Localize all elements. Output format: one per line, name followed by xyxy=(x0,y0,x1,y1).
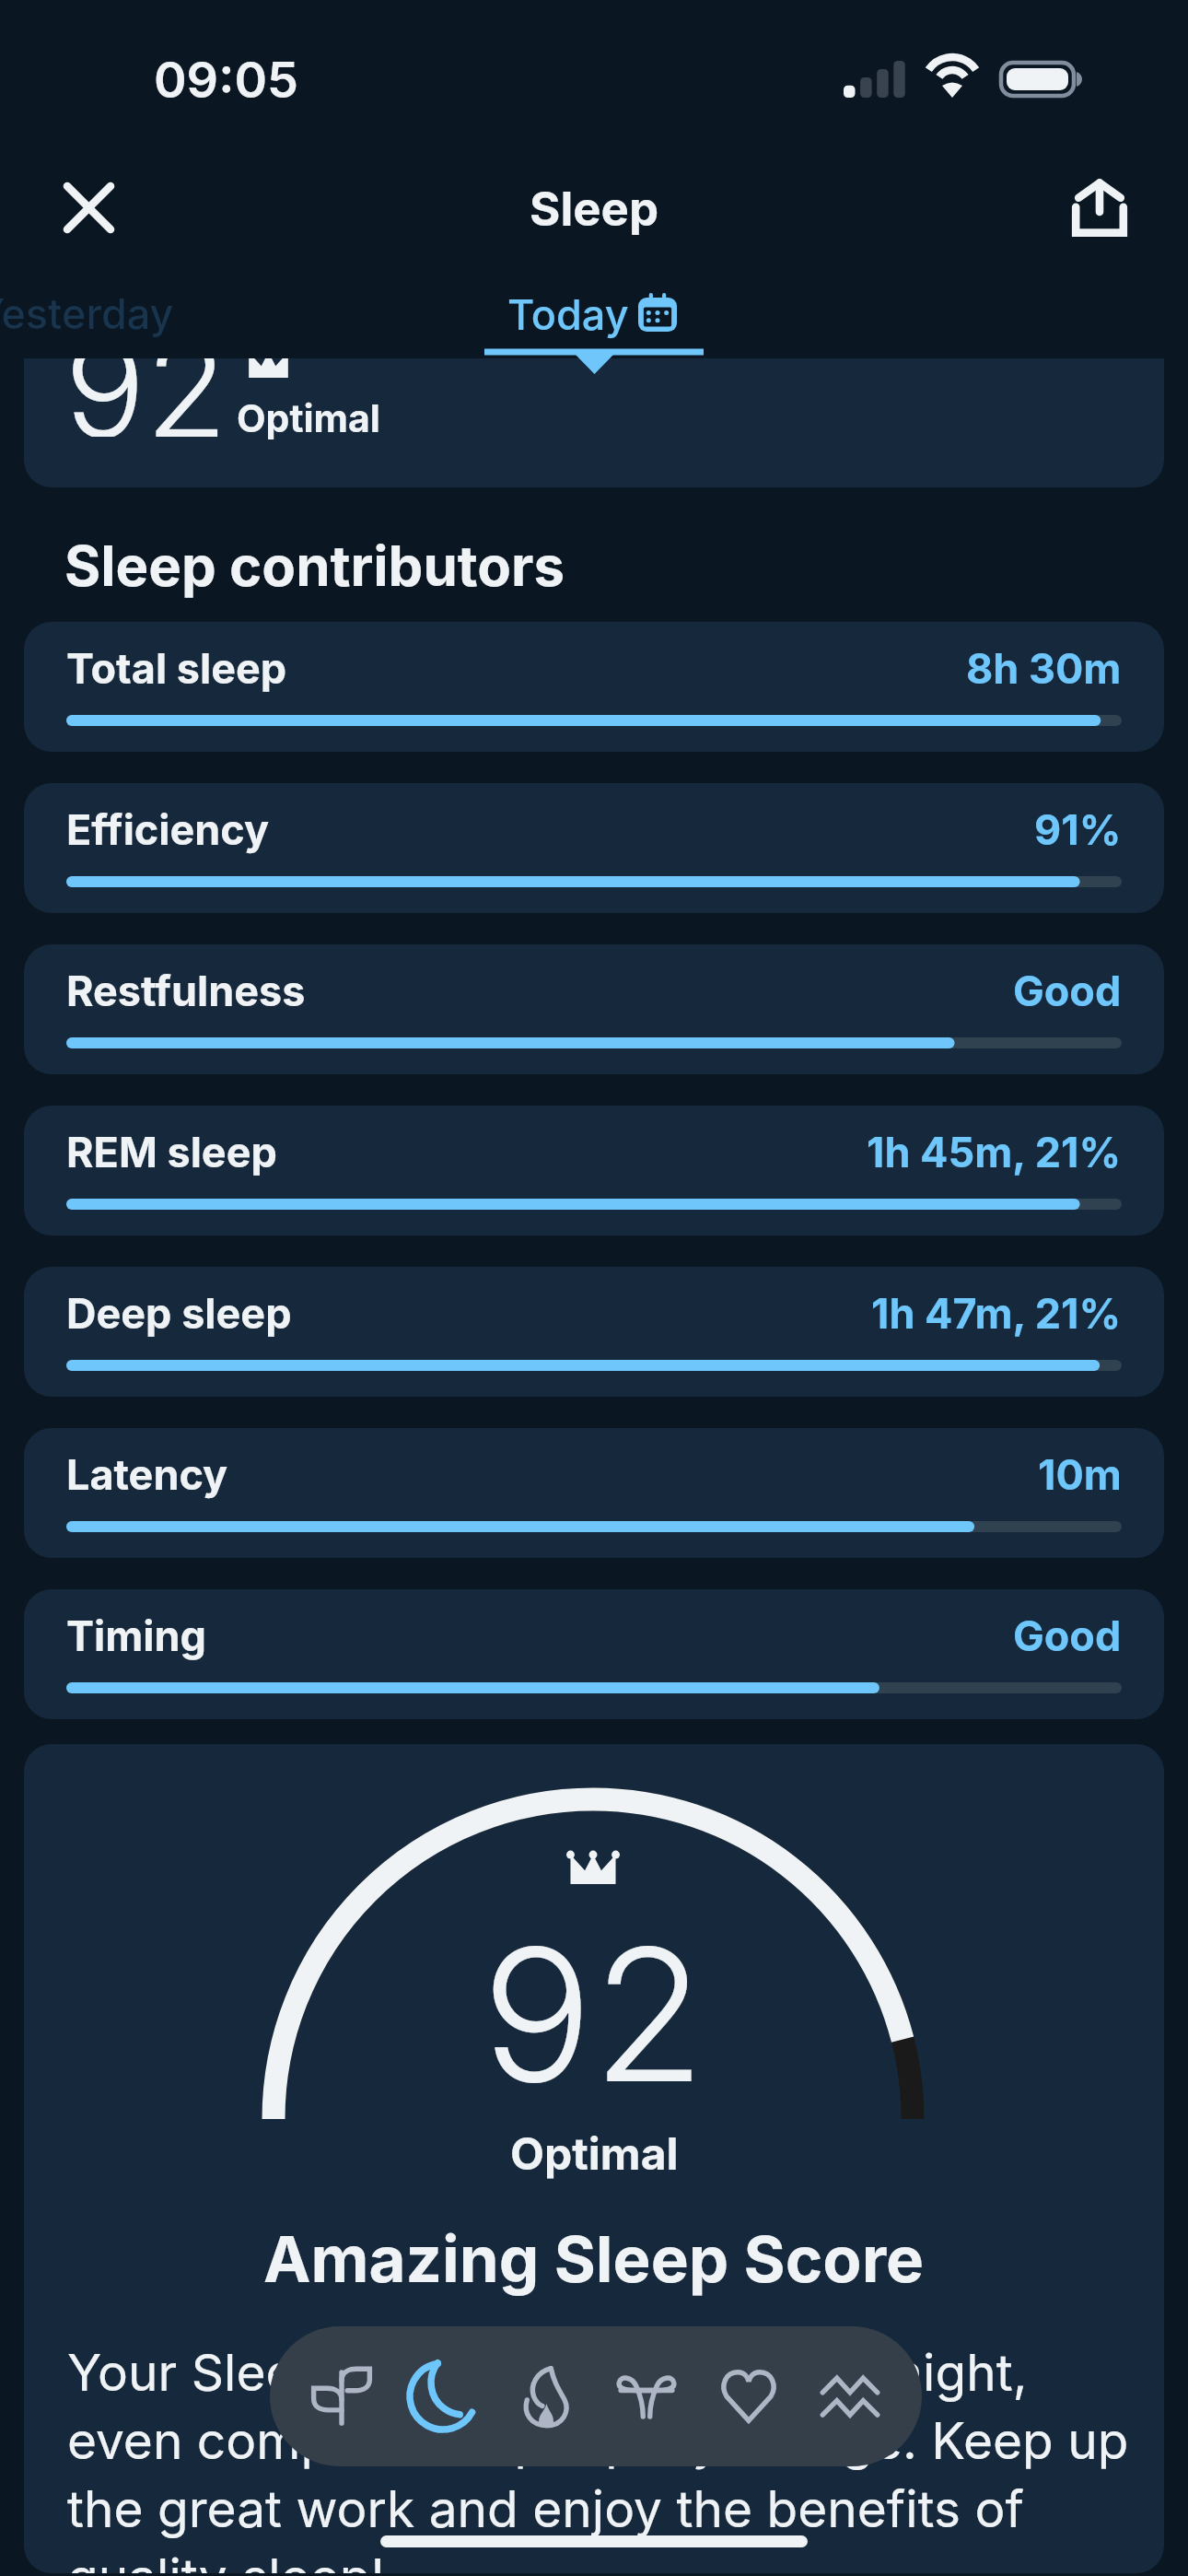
staticText: 1h 45m, 21% xyxy=(867,1127,1122,1177)
button[interactable]: Today xyxy=(497,276,687,339)
button[interactable]: Restfulness xyxy=(24,944,1164,1074)
staticText: 92 xyxy=(64,358,228,437)
staticText: 1h 47m, 21% xyxy=(871,1288,1122,1338)
staticText: Total sleep xyxy=(66,643,287,693)
staticText: Sleep contributors xyxy=(64,533,565,600)
staticText: 10m xyxy=(1038,1449,1122,1499)
staticText: 8h 30m xyxy=(966,643,1122,693)
button[interactable]: Stress xyxy=(598,2326,695,2466)
staticText: REM sleep xyxy=(66,1127,277,1177)
staticText: Optimal xyxy=(237,395,380,441)
staticText: Deep sleep xyxy=(66,1288,292,1338)
button[interactable]: Resilience xyxy=(801,2326,899,2466)
staticText: Optimal xyxy=(510,2126,679,2180)
button[interactable]: Readiness xyxy=(293,2326,390,2466)
button[interactable]: Close xyxy=(42,161,134,253)
staticText: Amazing Sleep Score xyxy=(263,2220,925,2297)
staticText: Timing xyxy=(66,1610,206,1660)
button[interactable]: 92 xyxy=(24,358,1164,487)
button[interactable]: Latency xyxy=(24,1428,1164,1558)
button[interactable]: Sleep xyxy=(394,2326,492,2466)
staticText: Efficiency xyxy=(66,804,270,854)
staticText: Your Sleep Score was optimal last night,… xyxy=(67,2342,1146,2573)
staticText: Sleep xyxy=(530,181,659,238)
button[interactable]: Yesterday xyxy=(0,288,174,338)
button[interactable]: Efficiency xyxy=(24,783,1164,913)
button[interactable]: Heart rate xyxy=(700,2326,798,2466)
staticText: Good xyxy=(1013,966,1122,1015)
staticText: Today xyxy=(507,289,629,339)
staticText: Good xyxy=(1013,1610,1122,1660)
staticText: 92 xyxy=(482,1903,706,2125)
button[interactable]: REM sleep xyxy=(24,1106,1164,1235)
staticText: 91% xyxy=(1034,804,1122,854)
button[interactable]: Deep sleep xyxy=(24,1267,1164,1397)
staticText: 09:05 xyxy=(154,50,298,110)
staticText: Latency xyxy=(66,1449,228,1499)
button[interactable]: Timing xyxy=(24,1589,1164,1719)
button[interactable]: Total sleep xyxy=(24,622,1164,752)
button[interactable]: Activity xyxy=(496,2326,594,2466)
staticText: Restfulness xyxy=(66,966,306,1015)
button[interactable]: Share xyxy=(1054,161,1146,253)
